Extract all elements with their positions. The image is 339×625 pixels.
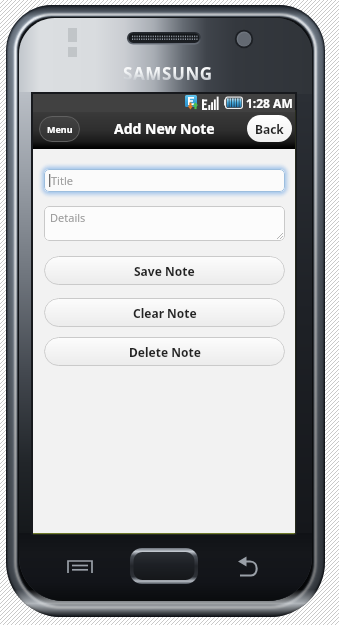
staticText: Title xyxy=(51,173,73,188)
button[interactable]: Details xyxy=(44,206,285,241)
button[interactable]: Clear Note xyxy=(44,298,285,327)
button[interactable]: Save Note xyxy=(44,256,285,285)
staticText: Delete Note xyxy=(129,344,201,360)
button[interactable]: Home xyxy=(130,546,198,586)
staticText: Add New Note xyxy=(114,119,215,138)
button[interactable]: Title xyxy=(44,169,285,192)
staticText: 1:28 AM xyxy=(246,95,293,111)
staticText: Details xyxy=(50,210,86,225)
button[interactable]: Delete Note xyxy=(44,337,285,366)
staticText: SAMSUNG xyxy=(123,62,213,80)
staticText: Save Note xyxy=(134,263,195,279)
button[interactable]: Menu xyxy=(39,116,80,142)
button[interactable]: Menu xyxy=(62,552,98,582)
staticText: Clear Note xyxy=(133,305,197,321)
button[interactable]: Back xyxy=(247,115,292,142)
button[interactable]: Back xyxy=(234,552,266,582)
staticText: Back xyxy=(255,121,284,137)
staticText: Menu xyxy=(47,123,73,135)
